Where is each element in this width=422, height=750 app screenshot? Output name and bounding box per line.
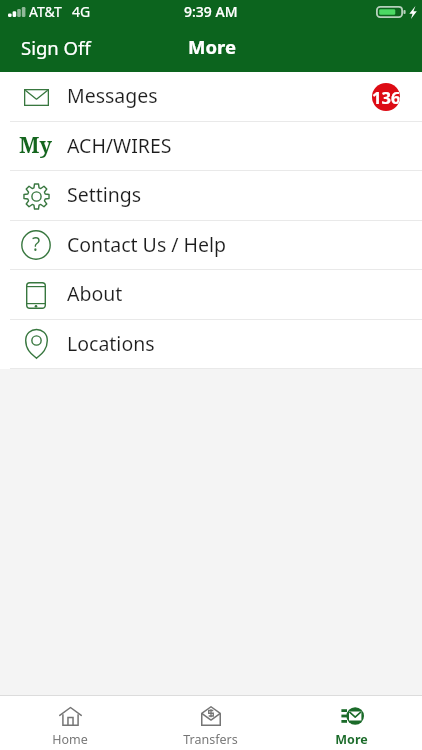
staticText: Transfers — [183, 731, 238, 748]
staticText: About — [67, 280, 123, 307]
staticText: ACH/WIRES — [67, 132, 172, 159]
button[interactable]: My — [0, 122, 422, 171]
staticText: 136 — [372, 86, 400, 108]
staticText: Messages — [67, 82, 158, 109]
staticText: More — [188, 34, 236, 59]
staticText: Contact Us / Help — [67, 231, 227, 258]
staticText: ? — [32, 231, 41, 257]
button[interactable]: Sign Off — [0, 26, 112, 69]
button[interactable]: Settings — [0, 171, 422, 221]
button[interactable]: Locations — [0, 320, 422, 369]
button[interactable]: ? — [0, 221, 422, 270]
staticText: Sign Off — [21, 35, 91, 60]
button[interactable]: Transfers — [140, 696, 281, 750]
staticText: 9:39 AM — [184, 2, 238, 21]
button[interactable]: About — [0, 270, 422, 320]
staticText: More — [335, 731, 368, 748]
staticText: 4G — [72, 2, 91, 21]
button[interactable]: Messages — [0, 72, 422, 122]
button[interactable]: More — [281, 696, 422, 750]
staticText: AT&T — [29, 2, 62, 21]
staticText: Settings — [67, 181, 142, 208]
staticText: Locations — [67, 330, 155, 357]
staticText: My — [19, 130, 52, 159]
staticText: Home — [52, 731, 88, 748]
button[interactable]: Home — [0, 696, 140, 750]
